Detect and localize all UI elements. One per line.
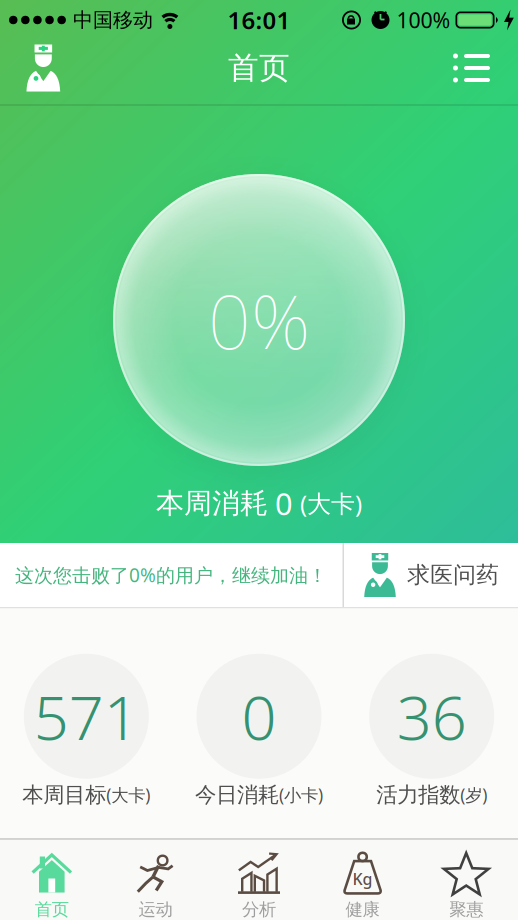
staticText: 分析 [242,899,276,920]
staticText: 16:01 [227,4,290,36]
staticText: 活力指数 [376,782,460,808]
staticText: 首页 [228,49,290,87]
staticText: (大卡) [106,783,150,806]
staticText: 100% [396,6,450,34]
staticText: 这次您击败了0%的用户，继续加油！ [15,562,326,589]
staticText: Kg [353,868,373,889]
staticText: 本周目标 [22,782,106,808]
staticText: 健康 [346,899,380,920]
button[interactable]: 首页 [0,853,104,920]
staticText: (小卡) [279,783,323,806]
button[interactable]: Kg [311,853,414,920]
button[interactable]: 运动 [104,853,207,920]
staticText: 0 [275,483,293,524]
button[interactable]: 菜单 [453,53,518,82]
staticText: (岁) [460,783,487,806]
staticText: (大卡) [300,487,362,519]
button[interactable]: 求医问药 [0,44,62,91]
staticText: 0 [241,675,276,757]
button[interactable]: 求医问药 [344,543,518,607]
staticText: 聚惠 [449,899,483,920]
staticText: 本周消耗 [156,486,268,521]
button[interactable]: 聚惠 [414,853,518,920]
staticText: 运动 [138,899,172,920]
staticText: 求医问药 [407,561,499,589]
staticText: 0% [208,270,310,370]
staticText: 36 [397,675,467,757]
staticText: 首页 [35,899,69,920]
staticText: 中国移动 [73,8,153,32]
staticText: 571 [34,675,139,757]
button[interactable]: 这次您击败了0%的用户，继续加油！ [0,562,342,588]
staticText: 今日消耗 [195,782,279,808]
button[interactable]: 分析 [207,853,311,920]
